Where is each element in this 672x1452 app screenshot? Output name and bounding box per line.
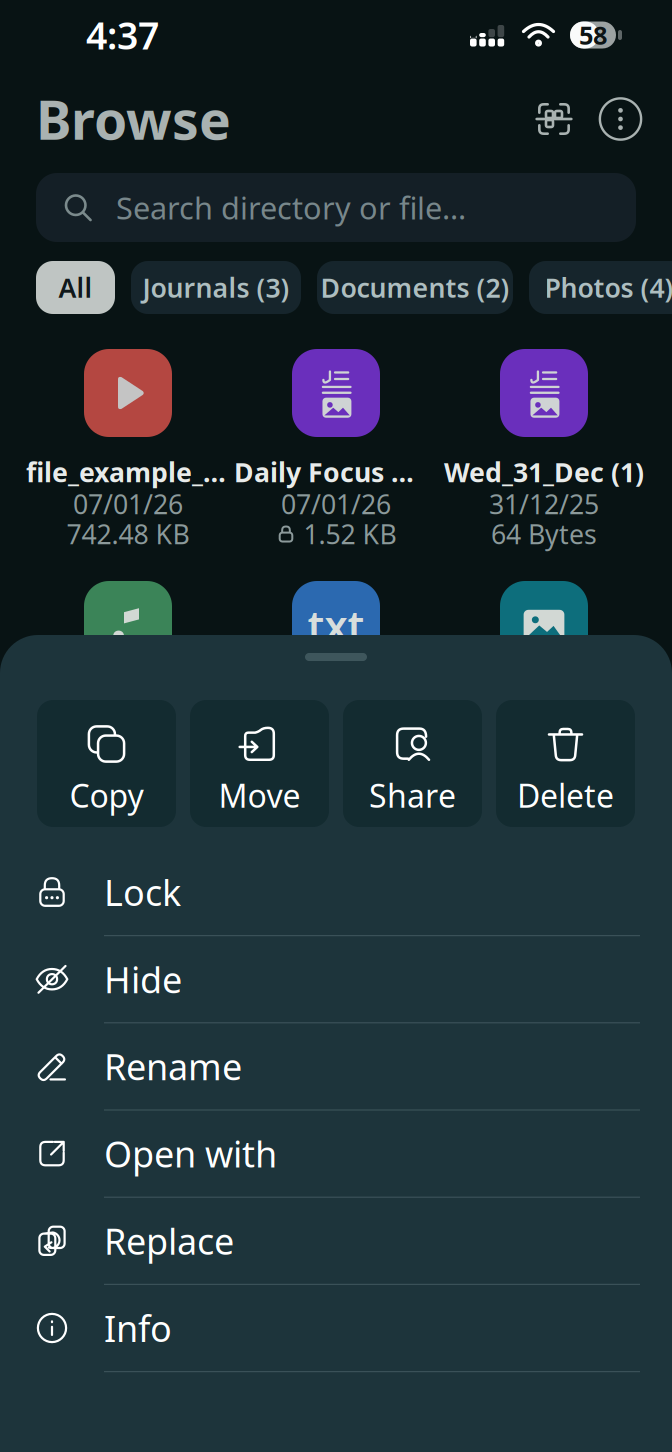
staticText: 07/01/26: [281, 486, 391, 522]
button[interactable]: Journals (3): [131, 261, 301, 314]
staticText: Delete: [517, 774, 614, 816]
staticText: Move: [218, 774, 300, 816]
button[interactable]: Search directory or file...: [0, 173, 672, 242]
staticText: All: [58, 270, 92, 305]
staticText: 31/12/25: [489, 486, 599, 522]
staticText: txt: [307, 598, 364, 652]
button[interactable]: Share: [343, 700, 482, 827]
button[interactable]: Move: [190, 700, 329, 827]
staticText: Browse: [36, 84, 231, 154]
staticText: 1.52 KB: [303, 516, 396, 552]
staticText: Documents (2): [320, 270, 509, 305]
button[interactable]: Lock: [0, 849, 672, 936]
staticText: 58: [579, 18, 607, 52]
button[interactable]: Replace: [0, 1198, 672, 1285]
staticText: 742.48 KB: [66, 516, 189, 552]
staticText: Wed_31_Dec (1): [444, 454, 644, 490]
button[interactable]: Open with: [0, 1111, 672, 1198]
button[interactable]: Hide: [0, 936, 672, 1023]
button[interactable]: More options: [591, 89, 650, 148]
staticText: Replace: [104, 1217, 234, 1265]
button[interactable]: Info: [0, 1285, 672, 1372]
staticText: Open with: [104, 1130, 277, 1177]
button[interactable]: Documents (2): [317, 261, 513, 314]
button[interactable]: Photos (4): [529, 261, 672, 314]
button[interactable]: Delete: [496, 700, 635, 827]
staticText: file_example_A...: [26, 454, 230, 490]
staticText: Daily Focus We...: [234, 454, 438, 490]
staticText: Hide: [104, 955, 182, 1003]
staticText: Lock: [104, 868, 181, 916]
button[interactable]: All: [36, 261, 115, 314]
staticText: Search directory or file...: [116, 187, 466, 228]
staticText: Rename: [104, 1042, 242, 1090]
staticText: Photos (4): [544, 270, 672, 305]
staticText: 4:37: [86, 10, 159, 60]
staticText: Share: [369, 774, 456, 816]
staticText: 64 Bytes: [491, 516, 597, 552]
staticText: 07/01/26: [73, 486, 183, 522]
button[interactable]: Copy: [37, 700, 176, 827]
button[interactable]: Rename: [0, 1023, 672, 1111]
button[interactable]: Scan code: [525, 90, 583, 148]
staticText: Copy: [69, 774, 143, 816]
staticText: Journals (3): [142, 270, 289, 305]
staticText: Info: [104, 1304, 172, 1352]
